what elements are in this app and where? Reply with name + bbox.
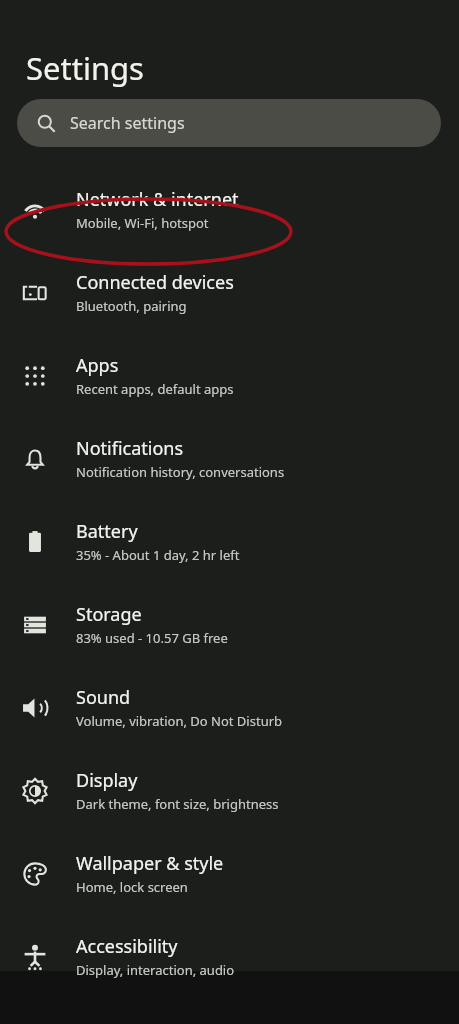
other: Display [22, 778, 76, 804]
button[interactable]: Connected devices [0, 251, 459, 334]
staticText: Sound [76, 685, 131, 710]
button[interactable]: Wallpaper & style [0, 832, 459, 915]
button[interactable]: Accessibility [0, 915, 459, 998]
other: Accessibility [22, 944, 76, 970]
staticText: Recent apps, default apps [76, 380, 234, 398]
other: Apps [22, 363, 76, 389]
staticText: Bluetooth, pairing [76, 297, 187, 315]
button[interactable]: Search settings [17, 99, 441, 147]
other: Connected devices [22, 280, 76, 306]
staticText: 35% - About 1 day, 2 hr left [76, 546, 240, 564]
staticText: Accessibility [76, 934, 178, 959]
staticText: Volume, vibration, Do Not Disturb [76, 712, 283, 730]
button[interactable]: Sound [0, 666, 459, 749]
staticText: Dark theme, font size, brightness [76, 795, 279, 813]
button[interactable]: Network & internet [0, 168, 459, 251]
other: Wallpaper & style [22, 861, 76, 887]
staticText: Network & internet [76, 187, 239, 212]
staticText: Settings [26, 47, 144, 89]
staticText: Display [76, 768, 138, 793]
button[interactable]: Notifications [0, 417, 459, 500]
staticText: Apps [76, 353, 119, 378]
button[interactable]: Storage [0, 583, 459, 666]
other: Notifications [22, 446, 76, 472]
other: Battery [22, 529, 76, 555]
button[interactable]: Apps [0, 334, 459, 417]
other: Network & internet [22, 197, 76, 223]
other: Sound [22, 695, 76, 721]
staticText: Wallpaper & style [76, 851, 224, 876]
staticText: Search settings [70, 112, 185, 134]
staticText: Home, lock screen [76, 878, 188, 896]
staticText: Connected devices [76, 270, 234, 295]
staticText: 83% used - 10.57 GB free [76, 629, 228, 647]
staticText: Notification history, conversations [76, 463, 285, 481]
staticText: Notifications [76, 436, 184, 461]
button[interactable]: Display [0, 749, 459, 832]
staticText: Mobile, Wi-Fi, hotspot [76, 214, 209, 232]
staticText: Battery [76, 519, 138, 544]
staticText: Storage [76, 602, 142, 627]
staticText: Display, interaction, audio [76, 961, 235, 979]
other: Storage [22, 612, 76, 638]
button[interactable]: Battery [0, 500, 459, 583]
